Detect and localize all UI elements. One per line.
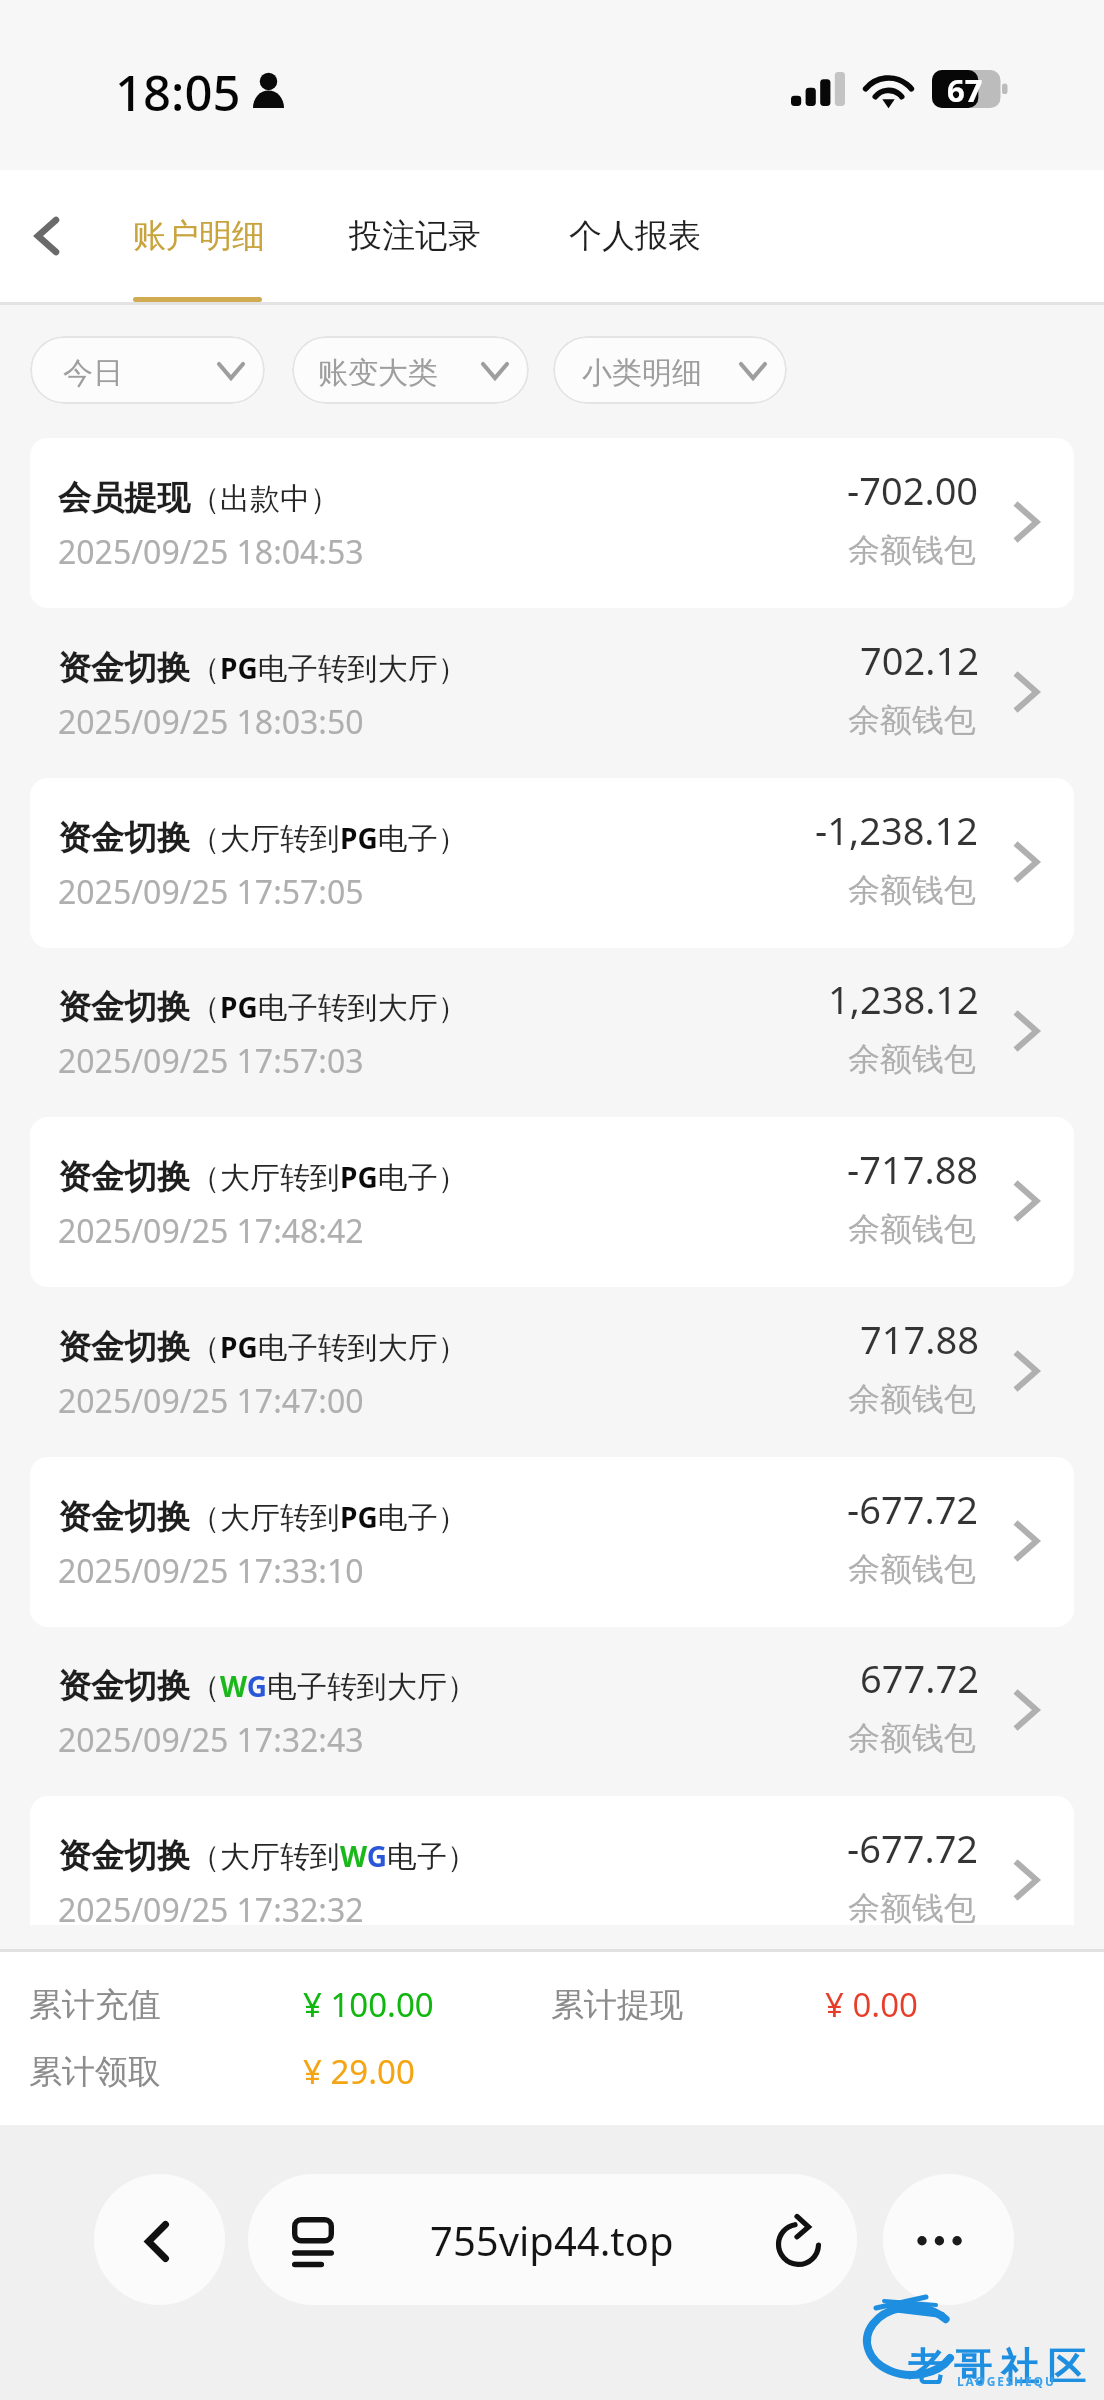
staticText: 755vip44.top	[430, 2213, 674, 2267]
staticText: -702.00	[847, 464, 979, 516]
staticText: -717.88	[847, 1143, 979, 1195]
button[interactable]: 今日	[30, 336, 265, 404]
staticText: ¥ 0.00	[825, 1982, 918, 2027]
staticText: 老哥社区	[902, 2343, 1090, 2391]
staticText: 资金切换（大厅转到PG电子）	[58, 1156, 468, 1198]
button[interactable]: 账户明细	[119, 170, 274, 303]
button[interactable]: Back	[94, 2174, 225, 2305]
staticText: 余额钱包	[848, 1549, 976, 1589]
button[interactable]: 资金切换（大厅转到PG电子）	[30, 1117, 1074, 1287]
button[interactable]: 个人报表	[555, 170, 710, 303]
staticText: 个人报表	[569, 215, 701, 257]
button[interactable]: 资金切换（PG电子转到大厅）	[30, 608, 1074, 778]
staticText: 2025/09/25 17:57:03	[58, 1039, 364, 1083]
staticText: 资金切换（PG电子转到大厅）	[58, 986, 468, 1028]
staticText: -677.72	[847, 1822, 979, 1874]
button[interactable]: 资金切换（大厅转到PG电子）	[30, 1457, 1074, 1627]
staticText: 余额钱包	[848, 530, 976, 570]
staticText: 余额钱包	[848, 700, 976, 740]
staticText: 账变大类	[318, 354, 438, 392]
staticText: -1,238.12	[815, 804, 979, 856]
staticText: 资金切换（PG电子转到大厅）	[58, 1326, 468, 1368]
button[interactable]: Refresh	[747, 2190, 849, 2298]
staticText: -677.72	[847, 1483, 979, 1535]
staticText: 余额钱包	[848, 1888, 976, 1925]
staticText: 2025/09/25 18:04:53	[58, 530, 364, 574]
staticText: 2025/09/25 18:03:50	[58, 700, 364, 744]
staticText: 2025/09/25 17:47:00	[58, 1379, 364, 1423]
button[interactable]: 投注记录	[335, 170, 490, 303]
button[interactable]: 资金切换（PG电子转到大厅）	[30, 1287, 1074, 1457]
staticText: 余额钱包	[848, 1209, 976, 1249]
button[interactable]: 账变大类	[292, 336, 529, 404]
staticText: 2025/09/25 17:33:10	[58, 1549, 364, 1593]
staticText: 677.72	[860, 1652, 979, 1704]
button[interactable]: 会员提现（出款中）	[30, 438, 1074, 608]
button[interactable]: 资金切换（大厅转到WG电子）	[30, 1796, 1074, 1925]
button[interactable]: Tabs	[248, 2174, 857, 2305]
staticText: 余额钱包	[848, 1379, 976, 1419]
staticText: 资金切换（WG电子转到大厅）	[58, 1665, 478, 1707]
staticText: 717.88	[860, 1313, 979, 1365]
staticText: 资金切换（PG电子转到大厅）	[58, 647, 468, 689]
staticText: 资金切换（大厅转到PG电子）	[58, 1496, 468, 1538]
staticText: LAOGESHEQU	[957, 2373, 1056, 2389]
staticText: 投注记录	[349, 215, 481, 257]
staticText: 2025/09/25 17:32:32	[58, 1888, 364, 1925]
button[interactable]: 资金切换（大厅转到PG电子）	[30, 778, 1074, 948]
staticText: 18:05	[115, 59, 241, 126]
staticText: ¥ 100.00	[303, 1982, 434, 2027]
staticText: 余额钱包	[848, 870, 976, 910]
staticText: 资金切换（大厅转到WG电子）	[58, 1835, 478, 1877]
staticText: 2025/09/25 17:57:05	[58, 870, 364, 914]
staticText: 累计提现	[551, 1984, 683, 2026]
staticText: 资金切换（大厅转到PG电子）	[58, 817, 468, 859]
staticText: 累计充值	[29, 1984, 161, 2026]
staticText: 余额钱包	[848, 1039, 976, 1079]
staticText: 余额钱包	[848, 1718, 976, 1758]
button[interactable]: Tabs	[262, 2186, 364, 2294]
staticText: 2025/09/25 17:32:43	[58, 1718, 364, 1762]
button[interactable]: More options	[883, 2174, 1014, 2305]
staticText: 账户明细	[133, 215, 265, 257]
staticText: 1,238.12	[828, 973, 979, 1025]
staticText: 67	[947, 69, 983, 107]
staticText: 2025/09/25 17:48:42	[58, 1209, 364, 1253]
button[interactable]: 小类明细	[553, 336, 787, 404]
staticText: 702.12	[860, 634, 979, 686]
staticText: 会员提现（出款中）	[58, 477, 340, 519]
button[interactable]: Back	[12, 201, 82, 271]
staticText: 小类明细	[582, 354, 702, 392]
staticText: 累计领取	[29, 2051, 161, 2093]
staticText: ¥ 29.00	[303, 2049, 415, 2094]
button[interactable]: 资金切换（WG电子转到大厅）	[30, 1626, 1074, 1796]
staticText: 今日	[63, 354, 123, 392]
button[interactable]: 资金切换（PG电子转到大厅）	[30, 947, 1074, 1117]
